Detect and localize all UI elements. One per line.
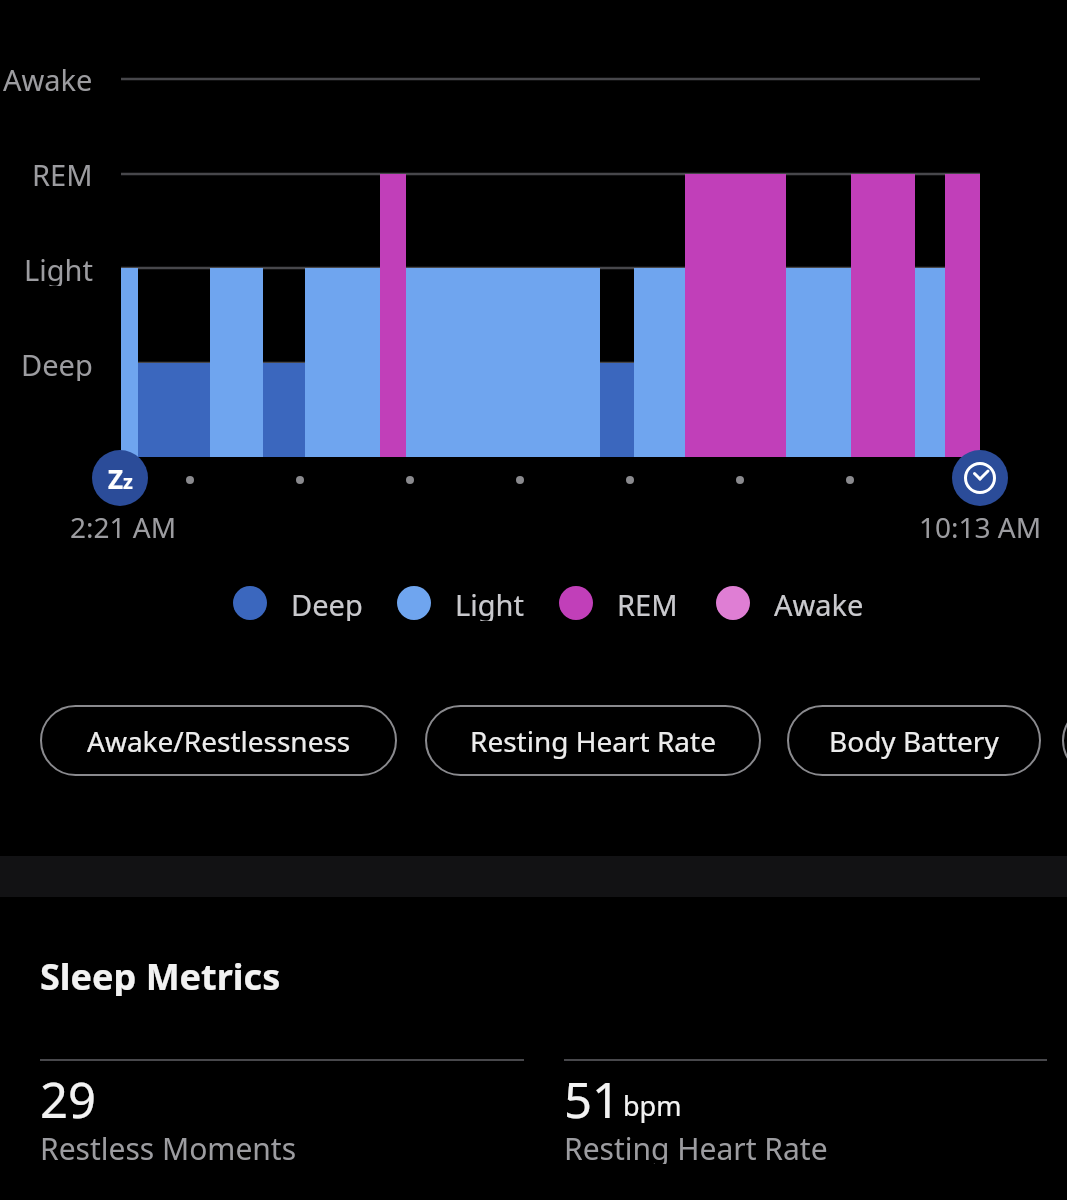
staticText: Deep (291, 585, 363, 621)
staticText: Awake (3, 60, 93, 96)
staticText: 2:21 AM (70, 508, 177, 544)
staticText: Light (24, 250, 93, 286)
staticText: Light (455, 585, 524, 621)
staticText: REM (617, 585, 678, 621)
staticText: Awake/Restlessness (87, 722, 351, 760)
staticText: Resting Heart Rate (564, 1128, 828, 1164)
staticText: Restless Moments (40, 1128, 297, 1164)
button[interactable]: Resting Heart Rate (425, 705, 761, 776)
staticText: 10:13 AM (919, 508, 1042, 544)
staticText: Zz (108, 461, 133, 496)
staticText: bpm (623, 1087, 682, 1123)
staticText: Deep (21, 345, 93, 381)
button[interactable]: Awake/Restlessness (40, 705, 397, 776)
staticText: Body Battery (829, 722, 999, 760)
staticText: Sleep Metrics (40, 952, 281, 996)
staticText: Awake (774, 585, 864, 621)
staticText: REM (32, 155, 93, 191)
button[interactable]: Body Battery (787, 705, 1041, 776)
staticText: 51 (564, 1066, 621, 1126)
button[interactable] (1062, 705, 1067, 776)
staticText: 29 (40, 1066, 97, 1126)
staticText: Resting Heart Rate (470, 722, 716, 760)
